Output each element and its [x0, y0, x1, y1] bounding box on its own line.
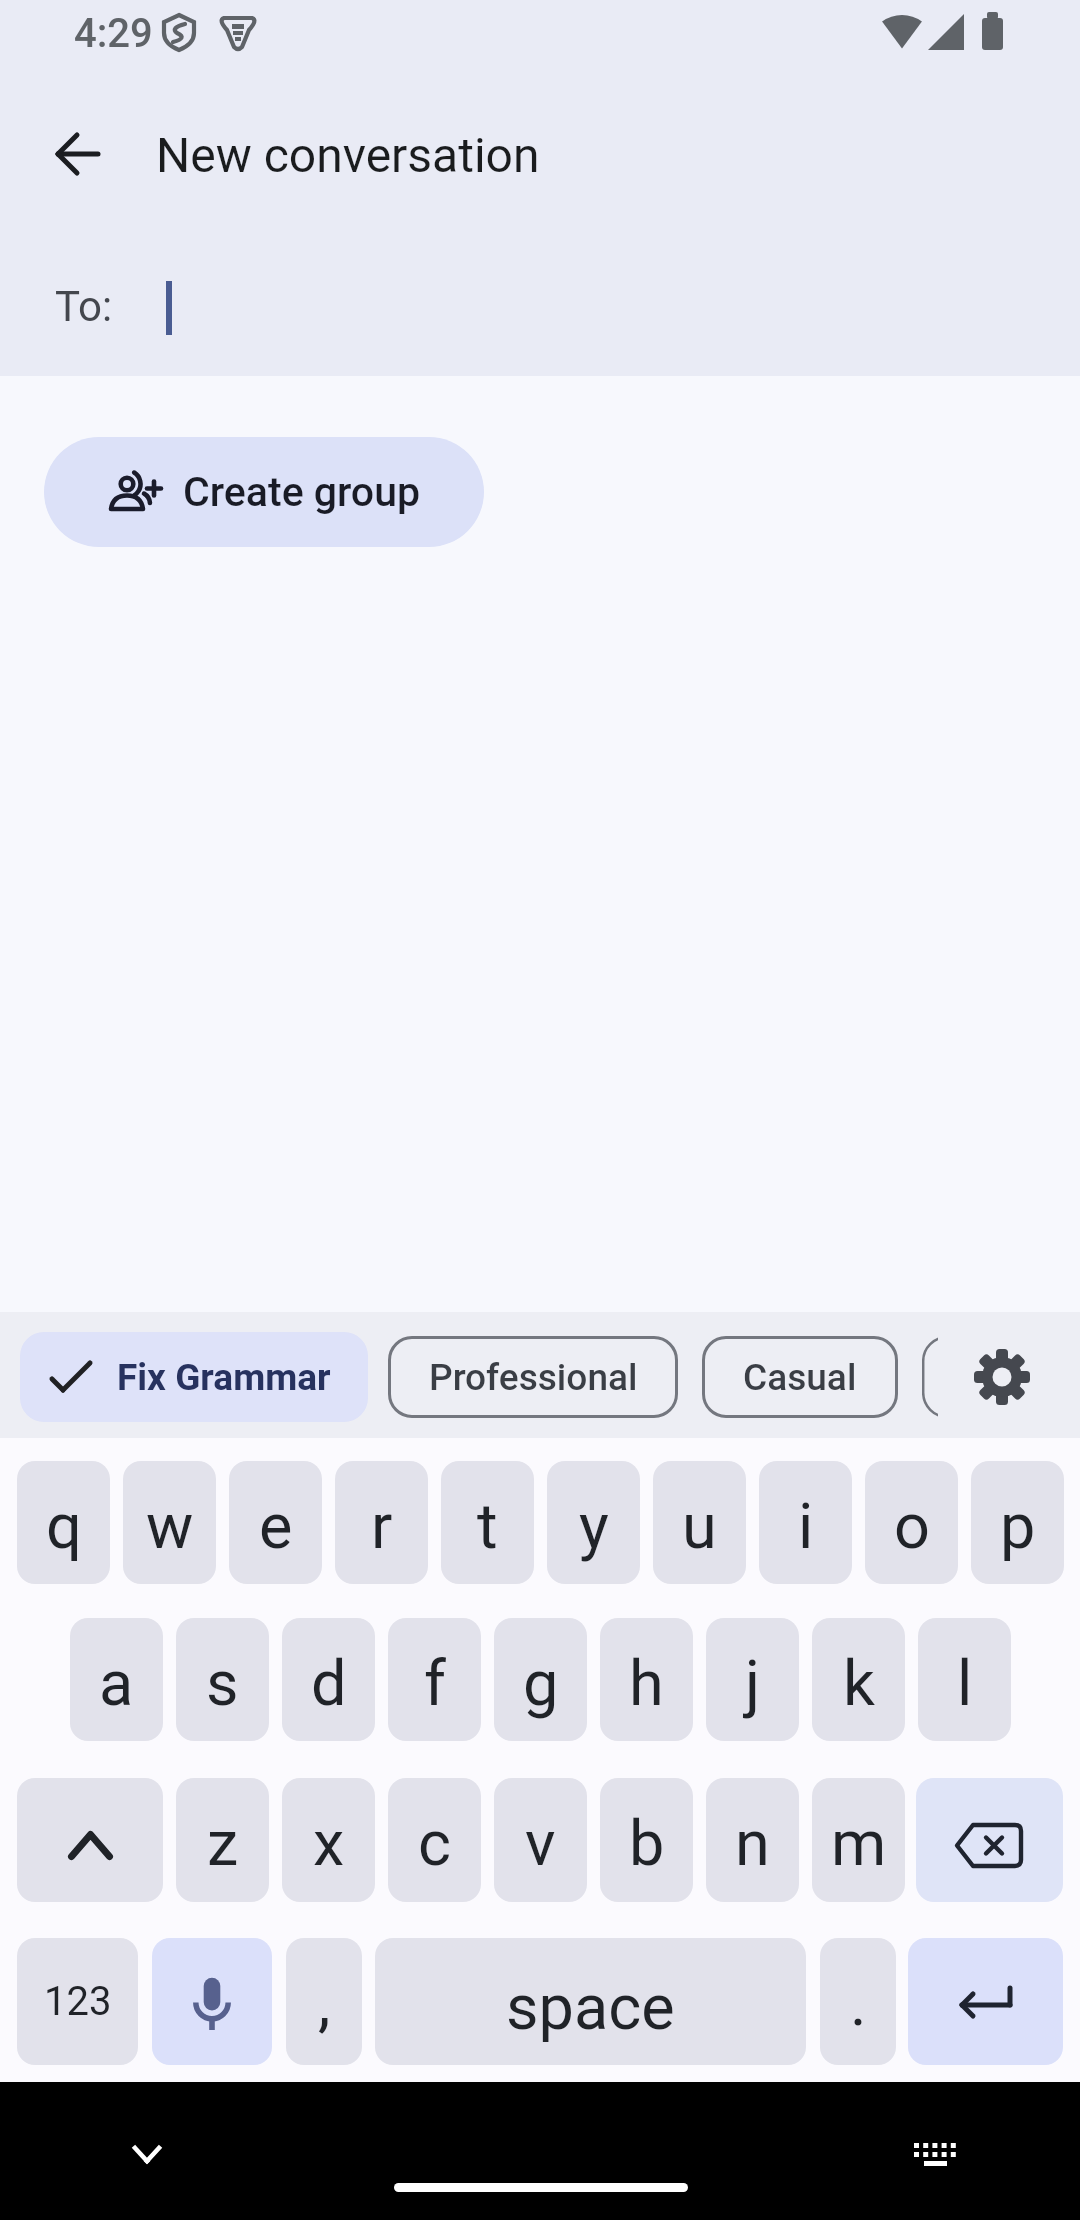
button[interactable]: ,	[286, 1938, 362, 2065]
button[interactable]: z	[176, 1778, 269, 1902]
staticText: p	[1000, 1490, 1036, 1564]
button[interactable]: m	[812, 1778, 905, 1902]
staticText: 123	[44, 1978, 112, 2025]
button[interactable]: d	[282, 1618, 375, 1741]
staticText: f	[424, 1647, 446, 1721]
staticText: space	[506, 1971, 675, 2045]
staticText: Casual	[743, 1356, 857, 1399]
staticText: l	[957, 1647, 973, 1721]
button[interactable]	[41, 118, 113, 190]
staticText: z	[207, 1807, 239, 1881]
staticText: q	[46, 1490, 82, 1564]
button[interactable]: n	[706, 1778, 799, 1902]
staticText: c	[418, 1807, 451, 1881]
staticText: y	[579, 1490, 609, 1564]
button[interactable]: s	[176, 1618, 269, 1741]
staticText: i	[798, 1490, 814, 1564]
button[interactable]: p	[971, 1461, 1064, 1584]
button[interactable]	[110, 2118, 184, 2190]
staticText: ,	[318, 1967, 331, 2041]
button[interactable]: Casual	[702, 1336, 898, 1418]
staticText: Fix Grammar	[117, 1356, 331, 1399]
button[interactable]: t	[441, 1461, 534, 1584]
staticText: h	[629, 1647, 664, 1721]
button[interactable]: h	[600, 1618, 693, 1741]
staticText: 4:29	[74, 10, 153, 57]
button[interactable]: space	[375, 1938, 806, 2065]
button[interactable]: Create group	[44, 437, 484, 547]
staticText: o	[894, 1490, 930, 1564]
button[interactable]: 123	[17, 1938, 138, 2065]
staticText: x	[313, 1807, 345, 1881]
button[interactable]: .	[820, 1938, 896, 2065]
button[interactable]: w	[123, 1461, 216, 1584]
staticText: m	[831, 1807, 887, 1881]
staticText: t	[477, 1490, 498, 1564]
button[interactable]: v	[494, 1778, 587, 1902]
button[interactable]	[962, 1337, 1042, 1417]
button[interactable]: c	[388, 1778, 481, 1902]
staticText: j	[745, 1647, 761, 1721]
button[interactable]: y	[547, 1461, 640, 1584]
button[interactable]: Professional	[388, 1336, 678, 1418]
staticText: v	[525, 1807, 556, 1881]
button[interactable]: g	[494, 1618, 587, 1741]
staticText: s	[206, 1647, 239, 1721]
staticText: a	[99, 1647, 134, 1721]
staticText: n	[735, 1807, 770, 1881]
staticText: d	[311, 1647, 347, 1721]
staticText: To:	[55, 282, 113, 331]
button[interactable]	[916, 1778, 1063, 1902]
button[interactable]	[152, 1938, 272, 2065]
button[interactable]: x	[282, 1778, 375, 1902]
staticText: r	[371, 1490, 393, 1564]
staticText: .	[850, 1967, 867, 2041]
button[interactable]: i	[759, 1461, 852, 1584]
button[interactable]: f	[388, 1618, 481, 1741]
button[interactable]	[898, 2118, 972, 2190]
button[interactable]: u	[653, 1461, 746, 1584]
staticText: b	[629, 1807, 665, 1881]
button[interactable]: e	[229, 1461, 322, 1584]
button[interactable]: a	[70, 1618, 163, 1741]
button[interactable]: Fix Grammar	[20, 1332, 368, 1422]
button[interactable]: j	[706, 1618, 799, 1741]
button[interactable]: b	[600, 1778, 693, 1902]
staticText: u	[682, 1490, 717, 1564]
staticText: g	[523, 1647, 559, 1721]
button[interactable]	[908, 1938, 1063, 2065]
button[interactable]: o	[865, 1461, 958, 1584]
staticText: e	[259, 1490, 293, 1564]
button[interactable]: k	[812, 1618, 905, 1741]
staticText: w	[146, 1490, 194, 1564]
button[interactable]	[17, 1778, 163, 1902]
button[interactable]: l	[918, 1618, 1011, 1741]
staticText: k	[843, 1647, 875, 1721]
staticText: New conversation	[156, 127, 540, 183]
button[interactable]: r	[335, 1461, 428, 1584]
staticText: Create group	[183, 468, 421, 516]
button[interactable]: q	[17, 1461, 110, 1584]
staticText: Professional	[429, 1356, 638, 1399]
